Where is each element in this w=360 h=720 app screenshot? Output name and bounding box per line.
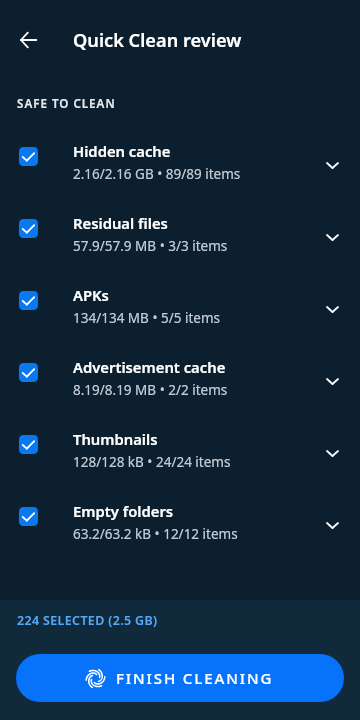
button[interactable]: Expand — [304, 345, 360, 417]
button[interactable]: FINISH CLEANING — [16, 654, 344, 702]
button[interactable]: Selected — [0, 273, 360, 345]
staticText: SAFE TO CLEAN — [17, 96, 116, 112]
button[interactable]: Selected — [19, 219, 38, 238]
staticText: APKs — [73, 285, 109, 305]
staticText: 2.16/2.16 GB • 89/89 items — [73, 165, 241, 183]
button[interactable]: Selected — [19, 291, 38, 310]
staticText: Thumbnails — [73, 429, 158, 449]
button[interactable]: Selected — [0, 489, 360, 561]
button[interactable]: Expand — [304, 417, 360, 489]
staticText: Hidden cache — [73, 141, 171, 161]
button[interactable]: Selected — [19, 363, 38, 382]
button[interactable]: Selected — [0, 201, 360, 273]
staticText: 63.2/63.2 kB • 12/12 items — [73, 525, 238, 543]
staticText: 8.19/8.19 MB • 2/2 items — [73, 381, 228, 399]
button[interactable]: Selected — [19, 435, 38, 454]
button[interactable]: Expand — [304, 201, 360, 273]
staticText: 224 SELECTED (2.5 GB) — [17, 612, 158, 629]
button[interactable]: Expand — [304, 273, 360, 345]
staticText: Advertisement cache — [73, 357, 226, 377]
button[interactable]: Selected — [0, 417, 360, 489]
staticText: FINISH CLEANING — [116, 668, 274, 688]
button[interactable]: Selected — [0, 129, 360, 201]
staticText: 128/128 kB • 24/24 items — [73, 453, 231, 471]
button[interactable]: Selected — [19, 147, 38, 166]
staticText: 57.9/57.9 MB • 3/3 items — [73, 237, 228, 255]
staticText: Quick Clean review — [73, 28, 242, 53]
button[interactable]: Expand — [304, 489, 360, 561]
staticText: 134/134 MB • 5/5 items — [73, 309, 221, 327]
button[interactable]: Selected — [0, 345, 360, 417]
staticText: Residual files — [73, 213, 168, 233]
staticText: Empty folders — [73, 501, 174, 521]
button[interactable]: Expand — [304, 129, 360, 201]
button[interactable]: Back — [0, 12, 56, 68]
button[interactable]: Selected — [19, 507, 38, 526]
